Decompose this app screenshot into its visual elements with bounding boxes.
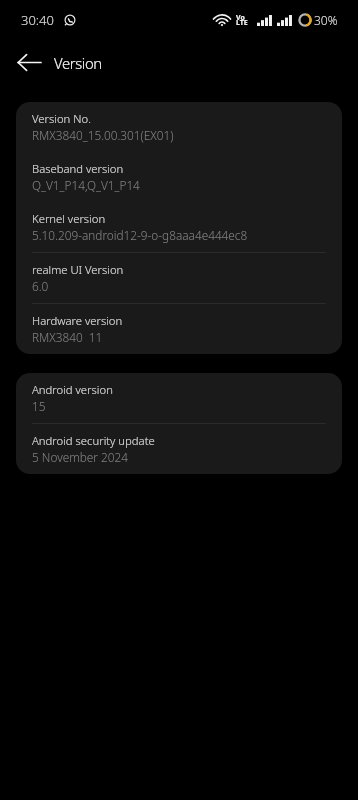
button[interactable]: Kernel version xyxy=(16,202,342,252)
button[interactable]: Android security update xyxy=(16,424,342,474)
staticText: RMX3840 11 xyxy=(32,329,103,345)
staticText: 5.10.209-android12-9-o-g8aaa4e444ec8 xyxy=(32,227,248,243)
staticText: 6.0 xyxy=(32,278,49,294)
staticText: Kernel version xyxy=(32,211,106,226)
button[interactable]: Baseband version xyxy=(16,152,342,202)
staticText: 15 xyxy=(32,398,46,414)
staticText: Hardware version xyxy=(32,313,123,328)
staticText: 30:40 xyxy=(21,11,54,29)
staticText: Baseband version xyxy=(32,161,124,176)
staticText: realme UI Version xyxy=(32,262,124,277)
staticText: Version No. xyxy=(32,111,91,126)
button[interactable]: Android version xyxy=(16,373,342,423)
button[interactable]: Back xyxy=(7,41,51,85)
staticText: RMX3840_15.00.301(EX01) xyxy=(32,127,174,143)
staticText: Android security update xyxy=(32,433,155,448)
staticText: 30% xyxy=(314,12,338,28)
button[interactable]: Hardware version xyxy=(16,304,342,354)
staticText: LTE xyxy=(236,18,248,28)
staticText: Android version xyxy=(32,382,113,397)
button[interactable]: realme UI Version xyxy=(16,253,342,303)
staticText: 5 November 2024 xyxy=(32,449,128,465)
button[interactable]: Version No. xyxy=(16,102,342,152)
staticText: Q_V1_P14,Q_V1_P14 xyxy=(32,177,140,193)
staticText: Version xyxy=(54,53,102,73)
staticText: Vo xyxy=(236,13,245,23)
